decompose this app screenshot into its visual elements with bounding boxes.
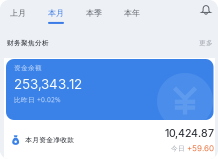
button[interactable]: 本年	[121, 0, 143, 31]
button[interactable]: 更多	[199, 39, 213, 47]
button[interactable]: Notifications	[201, 4, 211, 15]
staticText: +59.60	[187, 144, 214, 153]
button[interactable]: 本季	[83, 0, 105, 31]
staticText: 比昨日 +0.02%	[14, 95, 61, 104]
staticText: 本月资金净收款	[25, 136, 74, 144]
staticText: 本季	[86, 8, 102, 18]
staticText: 10,424.87	[165, 127, 214, 140]
staticText: 资金余额	[14, 64, 42, 72]
staticText: 更多	[199, 39, 213, 47]
button[interactable]: 本月	[45, 0, 67, 31]
button[interactable]: 本月资金净收款	[0, 126, 218, 154]
staticText: 253,343.12	[14, 76, 82, 92]
staticText: 上月	[10, 8, 26, 18]
staticText: 本年	[124, 8, 140, 18]
staticText: 财务聚焦分析	[7, 39, 49, 47]
button[interactable]: 上月	[7, 0, 29, 31]
staticText: 今日	[171, 144, 185, 153]
staticText: 本月	[48, 8, 64, 18]
